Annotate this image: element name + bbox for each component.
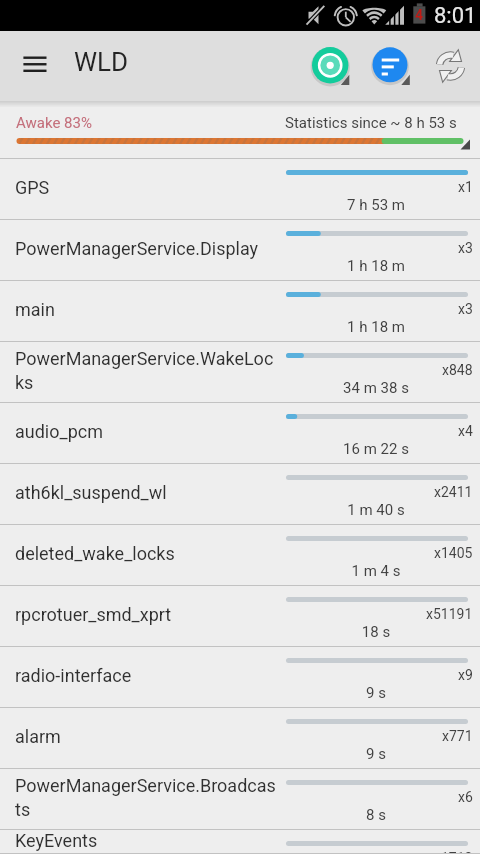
staticText: audio_pcm [15, 421, 103, 442]
staticText: 9 s [288, 745, 464, 763]
staticText: PowerManagerService.Broadcasts [15, 775, 278, 820]
staticText: 8 s [288, 806, 464, 824]
staticText: radio-interface [15, 665, 132, 686]
button[interactable]: GPS [0, 159, 480, 220]
button[interactable]: radio-interface [0, 647, 480, 708]
button[interactable]: rpcrotuer_smd_xprt [0, 586, 480, 647]
staticText: main [15, 299, 55, 320]
button[interactable]: Recording mode [308, 43, 354, 89]
staticText: x1712 [434, 850, 473, 854]
staticText: x6 [458, 789, 473, 805]
staticText: 4 [415, 7, 424, 23]
button[interactable]: PowerManagerService.WakeLocks [0, 342, 480, 403]
staticText: GPS [15, 177, 50, 198]
staticText: x4 [458, 423, 473, 439]
staticText: 1 h 18 m [288, 257, 464, 275]
staticText: 34 m 38 s [288, 379, 464, 397]
staticText: x848 [442, 362, 473, 378]
staticText: 9 s [288, 684, 464, 702]
button[interactable]: Refresh [430, 44, 472, 88]
staticText: x3 [458, 301, 473, 317]
staticText: 1 m 40 s [288, 501, 464, 519]
staticText: alarm [15, 726, 61, 747]
staticText: PowerManagerService.Display [15, 238, 259, 259]
staticText: 1 h 18 m [288, 318, 464, 336]
staticText: PowerManagerService.WakeLocks [15, 348, 278, 393]
staticText: x1 [458, 179, 473, 195]
staticText: 1 m 4 s [288, 562, 464, 580]
staticText: ath6kl_suspend_wl [15, 482, 167, 503]
staticText: Statistics since ~ 8 h 53 s [285, 114, 457, 132]
button[interactable]: ath6kl_suspend_wl [0, 464, 480, 525]
staticText: WLD [74, 47, 129, 77]
staticText: 7 h 53 m [288, 196, 464, 214]
staticText: x9 [458, 667, 473, 683]
button[interactable]: PowerManagerService.Broadcasts [0, 769, 480, 830]
staticText: x2411 [434, 484, 473, 500]
button[interactable]: Sort order [370, 43, 414, 89]
staticText: KeyEvents [15, 830, 98, 851]
button[interactable]: main [0, 281, 480, 342]
staticText: x3 [458, 240, 473, 256]
button[interactable]: alarm [0, 708, 480, 769]
staticText: Awake 83% [16, 114, 92, 132]
staticText: deleted_wake_locks [15, 543, 175, 564]
button[interactable]: PowerManagerService.Display [0, 220, 480, 281]
button[interactable]: audio_pcm [0, 403, 480, 464]
staticText: x771 [442, 728, 473, 744]
staticText: 16 m 22 s [288, 440, 464, 458]
staticText: x1405 [434, 545, 473, 561]
staticText: x51191 [426, 606, 473, 622]
button[interactable]: KeyEvents [0, 830, 480, 854]
button[interactable]: Open navigation menu [4, 47, 52, 95]
staticText: 18 s [288, 623, 464, 641]
staticText: 8:01 [434, 3, 477, 29]
button[interactable]: deleted_wake_locks [0, 525, 480, 586]
staticText: rpcrotuer_smd_xprt [15, 604, 172, 625]
